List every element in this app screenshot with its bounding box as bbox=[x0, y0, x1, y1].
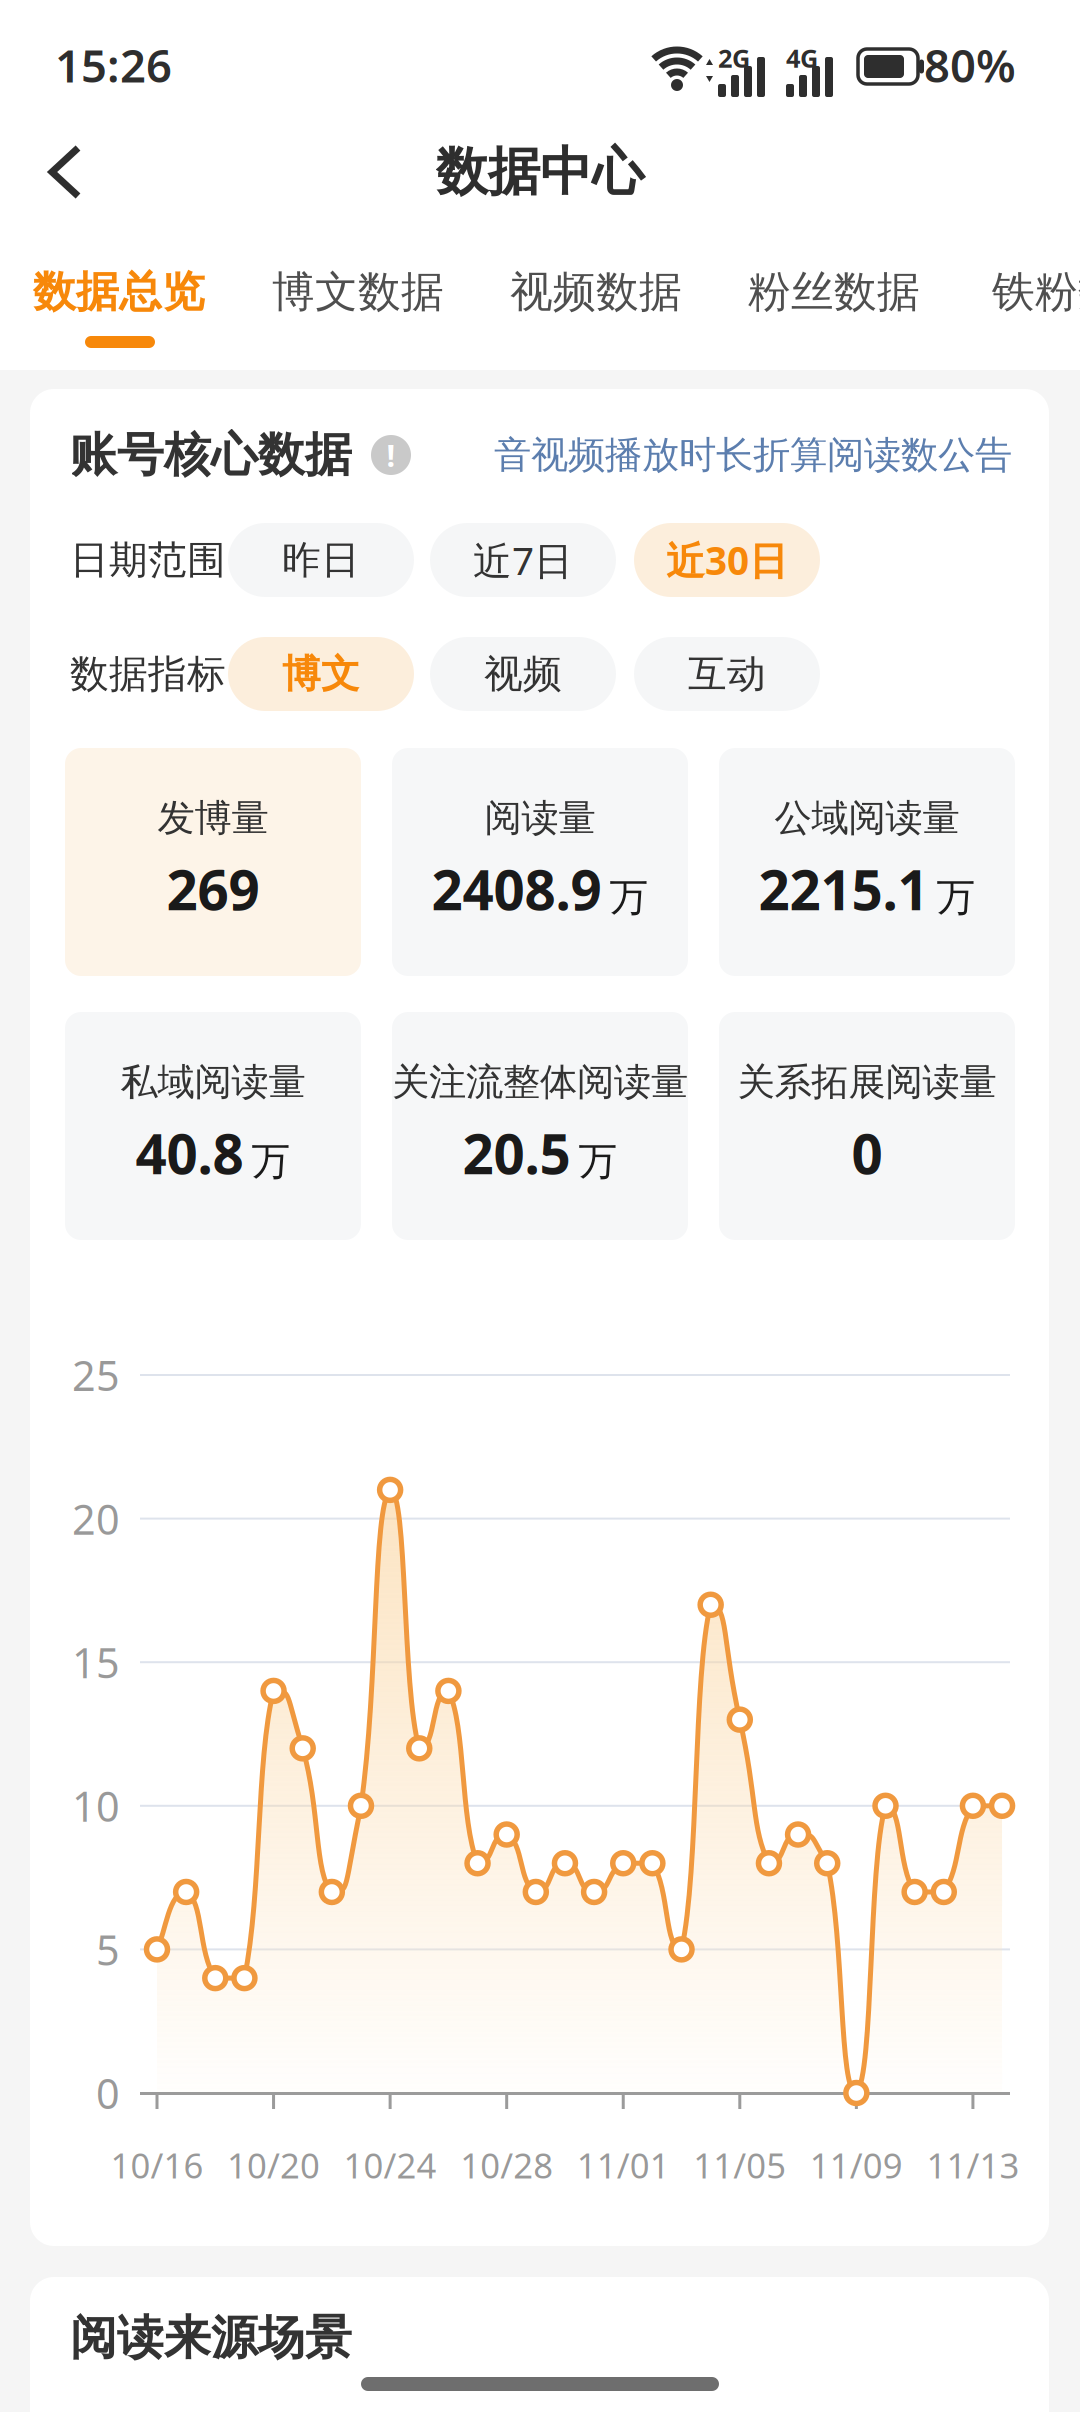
button[interactable]: 关注流整体阅读量 bbox=[392, 1012, 688, 1240]
staticText: 音视频播放时长折算阅读数公告 bbox=[494, 432, 1012, 478]
staticText: 视频 bbox=[484, 650, 562, 698]
button[interactable]: 近30日 bbox=[634, 523, 820, 597]
button[interactable]: 视频 bbox=[430, 637, 616, 711]
staticText: 阅读量 bbox=[484, 795, 595, 841]
staticText: 私域阅读量 bbox=[120, 1059, 305, 1105]
button[interactable]: 私域阅读量 bbox=[65, 1012, 361, 1240]
staticText: 40.8 bbox=[135, 1117, 243, 1189]
staticText: 近30日 bbox=[666, 534, 788, 586]
button[interactable] bbox=[46, 144, 90, 200]
button[interactable]: 近7日 bbox=[430, 523, 616, 597]
staticText: 发博量 bbox=[157, 795, 268, 841]
staticText: 0 bbox=[96, 2066, 120, 2120]
staticText: 2408.9 bbox=[431, 853, 601, 925]
button[interactable]: 发博量 bbox=[65, 748, 361, 976]
staticText: 万 bbox=[578, 1138, 617, 1185]
staticText: 粉丝数据 bbox=[748, 266, 920, 318]
staticText: 账号核心数据 bbox=[70, 426, 352, 484]
staticText: 15 bbox=[72, 1635, 120, 1690]
button[interactable]: 视频数据 bbox=[476, 263, 716, 321]
staticText: 2G bbox=[718, 41, 750, 75]
button[interactable]: 关系拓展阅读量 bbox=[719, 1012, 1015, 1240]
staticText: 博文 bbox=[282, 650, 360, 698]
staticText: 10 bbox=[72, 1778, 120, 1833]
button[interactable]: 铁粉数据 bbox=[958, 263, 1080, 321]
staticText: 数据指标 bbox=[70, 650, 226, 698]
staticText: ! bbox=[386, 435, 395, 475]
staticText: 关系拓展阅读量 bbox=[737, 1059, 996, 1105]
staticText: 视频数据 bbox=[510, 266, 682, 318]
staticText: 铁粉数据 bbox=[992, 266, 1080, 318]
staticText: 博文数据 bbox=[272, 266, 444, 318]
staticText: 10/24 bbox=[344, 2142, 437, 2188]
staticText: 关注流整体阅读量 bbox=[392, 1059, 688, 1105]
button[interactable]: 博文 bbox=[228, 637, 414, 711]
staticText: 15:26 bbox=[55, 35, 172, 95]
staticText: 2215.1 bbox=[758, 853, 928, 925]
staticText: 5 bbox=[96, 1922, 120, 1977]
staticText: 25 bbox=[72, 1348, 120, 1402]
staticText: 数据中心 bbox=[436, 140, 644, 204]
button[interactable]: 互动 bbox=[634, 637, 820, 711]
staticText: 日期范围 bbox=[70, 536, 226, 584]
staticText: 公域阅读量 bbox=[774, 795, 959, 841]
staticText: 11/05 bbox=[693, 2142, 786, 2188]
staticText: 万 bbox=[936, 874, 975, 921]
button[interactable]: 昨日 bbox=[228, 523, 414, 597]
staticText: 10/28 bbox=[460, 2142, 553, 2188]
staticText: 80% bbox=[924, 35, 1016, 95]
staticText: 阅读来源场景 bbox=[70, 2309, 352, 2367]
button[interactable]: 数据总览 bbox=[0, 263, 239, 321]
staticText: 昨日 bbox=[282, 536, 360, 584]
staticText: 11/01 bbox=[577, 2142, 670, 2188]
staticText: 近7日 bbox=[473, 534, 573, 586]
staticText: 10/20 bbox=[227, 2142, 320, 2188]
staticText: 互动 bbox=[688, 650, 766, 698]
staticText: 0 bbox=[851, 1117, 882, 1189]
button[interactable]: 粉丝数据 bbox=[714, 263, 954, 321]
staticText: 20.5 bbox=[462, 1117, 570, 1189]
button[interactable]: 阅读量 bbox=[392, 748, 688, 976]
staticText: 4G bbox=[786, 41, 818, 75]
staticText: 万 bbox=[251, 1138, 290, 1185]
button[interactable]: ! bbox=[371, 435, 411, 475]
staticText: 11/13 bbox=[926, 2142, 1019, 2188]
button[interactable]: 博文数据 bbox=[238, 263, 478, 321]
staticText: 20 bbox=[72, 1491, 120, 1546]
staticText: 10/16 bbox=[110, 2142, 203, 2188]
button[interactable]: 公域阅读量 bbox=[719, 748, 1015, 976]
staticText: 万 bbox=[609, 874, 648, 921]
button[interactable]: 音视频播放时长折算阅读数公告 bbox=[392, 427, 1012, 483]
staticText: 11/09 bbox=[810, 2142, 903, 2188]
staticText: 数据总览 bbox=[33, 266, 205, 318]
staticText: 269 bbox=[166, 853, 259, 925]
